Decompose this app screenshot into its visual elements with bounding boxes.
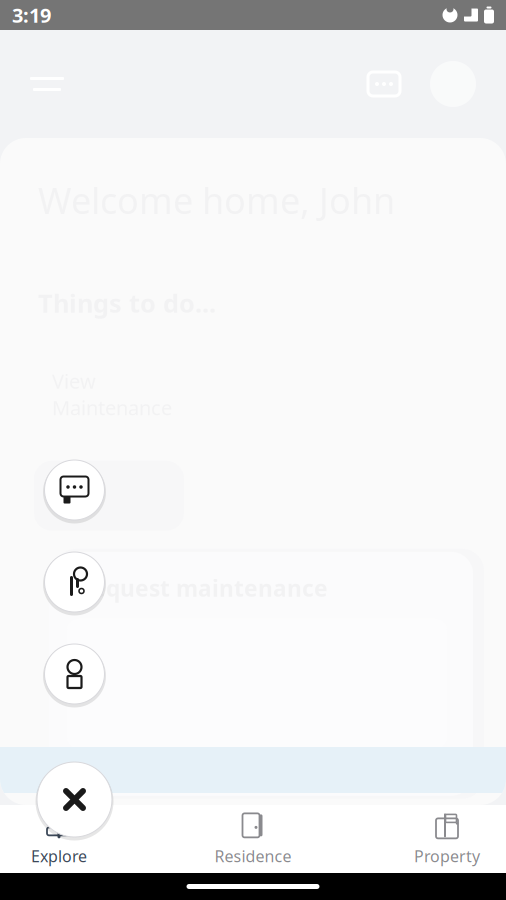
button[interactable]: Close bbox=[34, 759, 115, 840]
staticText: Explore bbox=[31, 845, 87, 867]
staticText: Residence bbox=[214, 845, 291, 867]
button[interactable]: Request maintenance bbox=[41, 549, 107, 615]
staticText: 3:19 bbox=[12, 2, 51, 28]
button[interactable]: Property bbox=[392, 808, 502, 870]
button[interactable]: Explore bbox=[4, 808, 114, 870]
button[interactable]: Contact bbox=[41, 641, 107, 707]
staticText: Request maintenance bbox=[77, 573, 328, 603]
button[interactable]: Messages bbox=[41, 457, 107, 523]
button[interactable]: Residence bbox=[198, 808, 308, 870]
staticText: Property bbox=[414, 845, 480, 867]
